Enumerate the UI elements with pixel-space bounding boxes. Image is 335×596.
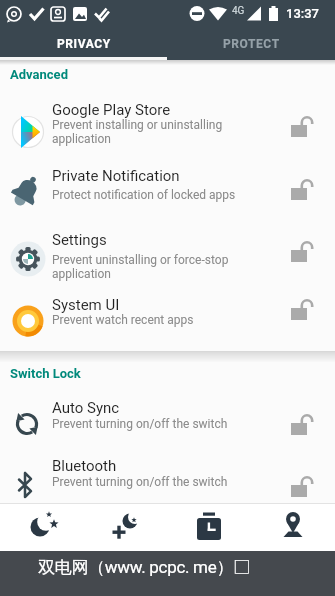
staticText: Private Notification <box>52 167 180 185</box>
staticText: Auto Sync <box>52 399 120 417</box>
staticText: Prevent uninstalling or force-stop appli… <box>52 253 229 281</box>
button[interactable]: System UI <box>0 290 335 348</box>
staticText: Google Play Store <box>52 101 171 119</box>
staticText: System UI <box>52 296 120 314</box>
staticText: Settings <box>52 231 107 249</box>
button[interactable]: PROTECT <box>167 28 335 60</box>
button[interactable]: Private Notification <box>0 160 335 215</box>
staticText: Protect notification of locked apps <box>52 188 236 202</box>
staticText: Prevent turning on/off the switch <box>52 417 228 431</box>
staticText: Advanced <box>10 67 68 82</box>
button[interactable] <box>252 503 335 551</box>
button[interactable]: PRIVACY <box>0 28 167 60</box>
staticText: 双电网（www. pcpc. me）□ <box>38 557 250 578</box>
button[interactable]: Google Play Store <box>0 93 335 160</box>
staticText: 4G <box>232 5 245 17</box>
button[interactable]: Bluetooth <box>0 448 335 503</box>
staticText: Prevent turning on/off the switch <box>52 475 228 489</box>
staticText: Switch Lock <box>10 366 81 381</box>
button[interactable]: Auto Sync <box>0 395 335 448</box>
staticText: 13:37 <box>286 6 320 21</box>
staticText: Bluetooth <box>52 457 117 475</box>
button[interactable]: Settings <box>0 215 335 290</box>
button[interactable] <box>0 503 84 551</box>
staticText: PROTECT <box>223 37 280 51</box>
staticText: Prevent installing or uninstalling appli… <box>52 118 223 146</box>
button[interactable] <box>168 503 252 551</box>
staticText: PRIVACY <box>57 37 111 51</box>
button[interactable] <box>84 503 168 551</box>
staticText: Prevent watch recent apps <box>52 313 194 327</box>
